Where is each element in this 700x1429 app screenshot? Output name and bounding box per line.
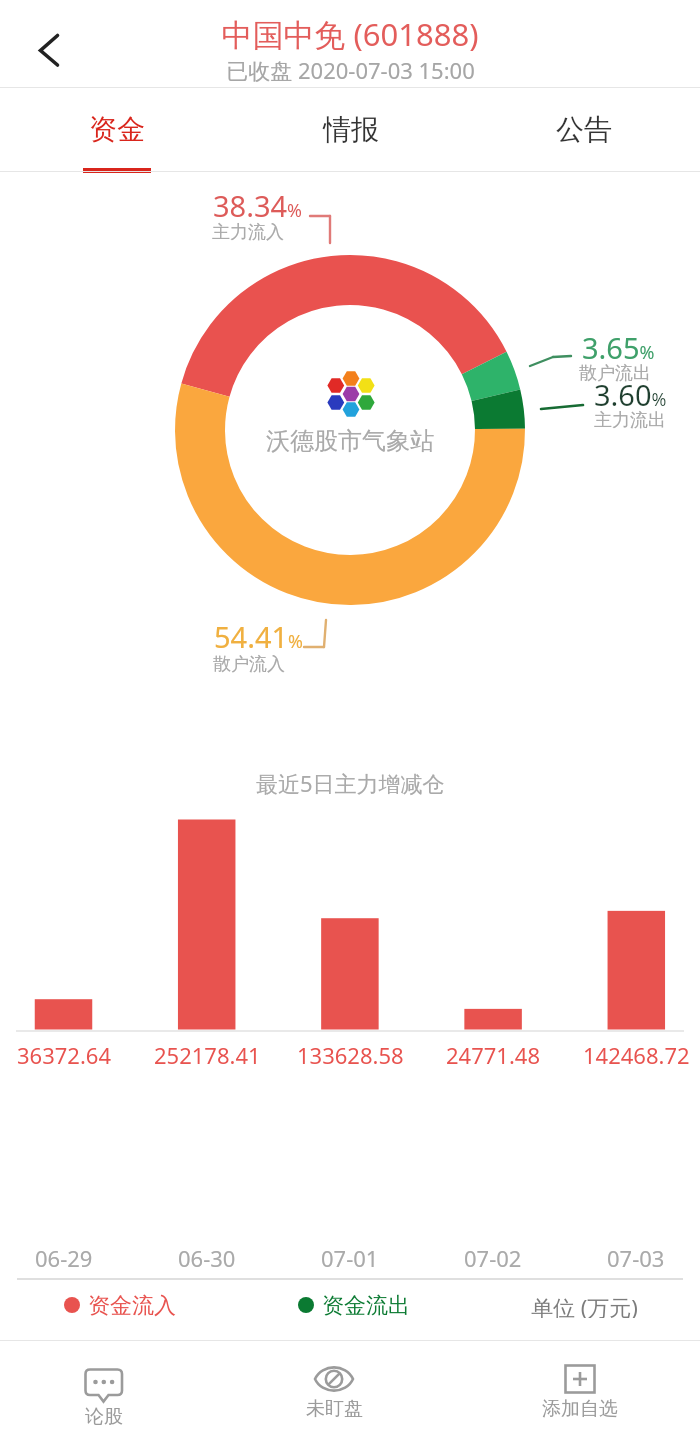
staticText: 最近5日主力增减仓	[256, 768, 445, 798]
button[interactable]: 论股	[34, 1341, 174, 1429]
staticText: 07-01	[321, 1243, 379, 1273]
button[interactable]: 资金流出	[298, 1292, 410, 1318]
staticText: 07-02	[464, 1243, 522, 1273]
staticText: 38.34%	[213, 186, 303, 225]
button[interactable]: 公告	[467, 88, 700, 172]
staticText: 07-03	[607, 1243, 665, 1273]
button[interactable]: 资金流入	[64, 1292, 176, 1318]
staticText: 情报	[323, 112, 379, 147]
staticText: 3.65%	[582, 328, 655, 367]
staticText: 3.60%	[594, 375, 667, 414]
staticText: 未盯盘	[306, 1397, 363, 1421]
staticText: 散户流入	[213, 653, 285, 676]
staticText: 252178.41	[154, 1040, 261, 1070]
staticText: 资金	[89, 112, 145, 147]
staticText: 资金流入	[88, 1292, 176, 1318]
button[interactable]: 资金	[0, 88, 234, 172]
staticText: 单位 (万元)	[531, 1292, 638, 1318]
staticText: 已收盘 2020-07-03 15:00	[226, 55, 475, 85]
button[interactable]: 未盯盘	[264, 1341, 404, 1429]
staticText: 论股	[85, 1405, 123, 1429]
staticText: 沃德股市气象站	[266, 426, 434, 456]
staticText: 06-29	[35, 1243, 93, 1273]
staticText: 主力流出	[594, 409, 666, 432]
staticText: 中国中免 (601888)	[221, 13, 479, 55]
staticText: 添加自选	[542, 1397, 618, 1421]
staticText: 133628.58	[297, 1040, 404, 1070]
staticText: 24771.48	[446, 1040, 540, 1070]
staticText: 142468.72	[583, 1040, 690, 1070]
staticText: 散户流出	[579, 362, 651, 385]
staticText: 主力流入	[212, 221, 284, 244]
button[interactable]: 情报	[234, 88, 467, 172]
button[interactable]: 添加自选	[510, 1341, 650, 1429]
staticText: 公告	[556, 112, 612, 147]
staticText: 36372.64	[17, 1040, 111, 1070]
button[interactable]: Back	[0, 0, 98, 88]
staticText: 资金流出	[322, 1292, 410, 1318]
staticText: 54.41%	[214, 617, 304, 656]
staticText: 06-30	[178, 1243, 236, 1273]
